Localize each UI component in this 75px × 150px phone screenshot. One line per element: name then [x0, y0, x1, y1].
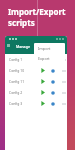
staticText: Config 10	[9, 68, 25, 73]
button[interactable]: Config 10	[5, 65, 67, 76]
button[interactable]: Config 11	[5, 76, 67, 87]
button[interactable]: Navigation menu	[6, 43, 11, 48]
staticText: Export	[38, 56, 50, 61]
button[interactable]: Run script	[39, 87, 46, 98]
staticText: Config 11	[9, 79, 25, 84]
button[interactable]: More options	[60, 65, 67, 76]
button[interactable]: Run script	[39, 98, 46, 109]
staticText: Manage	[16, 44, 30, 49]
staticText: Config 2	[9, 90, 23, 95]
button[interactable]: Config 3	[5, 98, 67, 109]
button[interactable]: Edit script	[49, 76, 56, 87]
button[interactable]: Edit script	[49, 98, 56, 109]
button[interactable]: Run script	[39, 76, 46, 87]
button[interactable]: Edit script	[49, 87, 56, 98]
staticText: Config 1	[9, 57, 23, 62]
button[interactable]: Edit script	[49, 65, 56, 76]
button[interactable]	[34, 43, 65, 52]
button[interactable]	[34, 52, 65, 61]
staticText: scripts	[8, 17, 35, 28]
button[interactable]: More options	[60, 98, 67, 109]
button[interactable]: Config 2	[5, 87, 67, 98]
button[interactable]: Run script	[39, 54, 46, 65]
staticText: Import	[38, 46, 51, 51]
staticText: Config 3	[9, 101, 23, 106]
button[interactable]: Run script	[39, 65, 46, 76]
staticText: Import/Export	[8, 6, 66, 17]
button[interactable]: More options	[60, 76, 67, 87]
button[interactable]: More options	[60, 87, 67, 98]
button[interactable]: More options	[60, 54, 67, 65]
button[interactable]: Config 1	[5, 54, 67, 65]
